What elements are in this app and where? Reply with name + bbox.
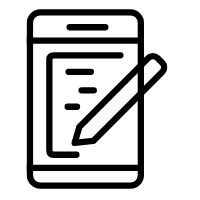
button[interactable]: Edit document on phone [0,0,200,200]
